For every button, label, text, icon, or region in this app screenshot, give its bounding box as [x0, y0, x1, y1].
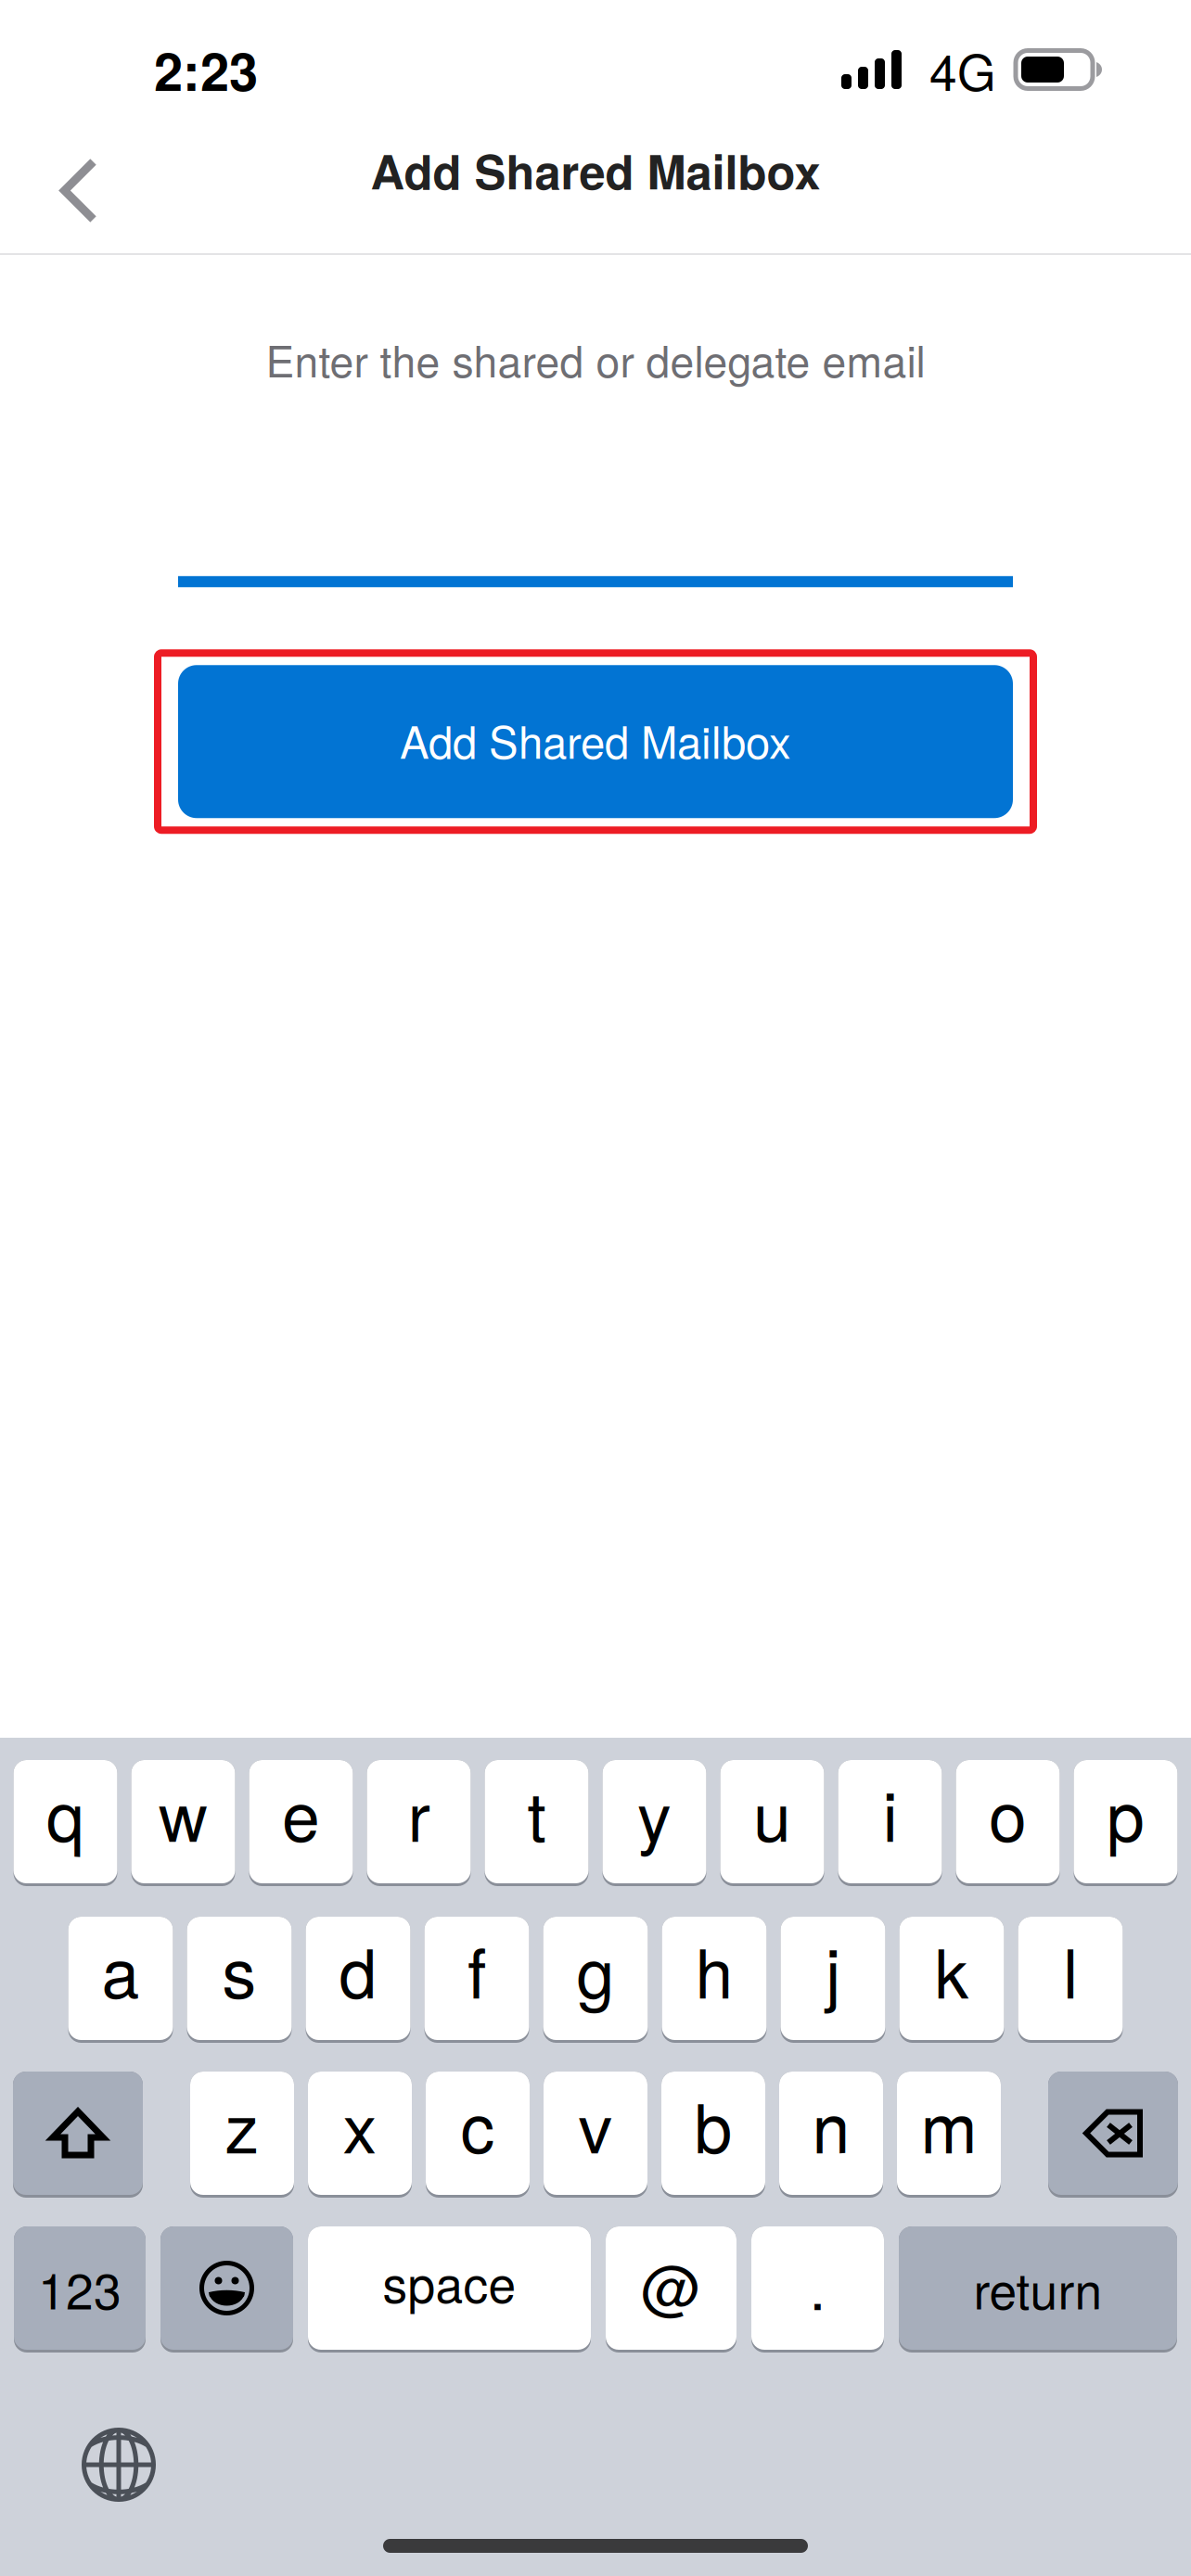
staticText: j [826, 1920, 840, 2018]
button[interactable]: Back [0, 135, 134, 246]
staticText: space [383, 2246, 516, 2317]
button[interactable]: o [956, 1760, 1060, 1883]
staticText: e [282, 1764, 320, 1861]
staticText: g [576, 1920, 615, 2018]
button[interactable]: b [661, 2072, 765, 2195]
button[interactable]: Emoji [160, 2226, 293, 2350]
button[interactable]: c [426, 2072, 530, 2195]
staticText: k [935, 1920, 969, 2018]
button[interactable]: q [13, 1760, 117, 1883]
button[interactable]: space [308, 2226, 591, 2350]
button[interactable]: s [187, 1917, 292, 2040]
staticText: 123 [38, 2253, 122, 2324]
button[interactable]: Add Shared Mailbox [154, 648, 1037, 835]
staticText: t [527, 1764, 546, 1861]
button[interactable]: n [779, 2072, 883, 2195]
staticText: o [989, 1764, 1027, 1861]
button[interactable]: g [543, 1917, 648, 2040]
button[interactable]: h [662, 1917, 767, 2040]
button[interactable]: w [131, 1760, 235, 1883]
staticText: w [159, 1764, 208, 1861]
button[interactable]: v [544, 2072, 647, 2195]
staticText: r [408, 1764, 430, 1861]
staticText: return [973, 2253, 1102, 2324]
staticText: Enter the shared or delegate email [266, 328, 925, 390]
staticText: y [637, 1764, 672, 1861]
button[interactable]: l [1018, 1917, 1123, 2040]
button[interactable]: 123 [14, 2226, 146, 2350]
button[interactable]: a [68, 1917, 173, 2040]
button[interactable]: . [751, 2226, 884, 2350]
staticText: a [102, 1920, 140, 2018]
button[interactable]: d [306, 1917, 410, 2040]
button[interactable]: y [602, 1760, 706, 1883]
staticText: . [809, 2242, 826, 2327]
staticText: z [225, 2075, 259, 2173]
staticText: c [461, 2075, 495, 2173]
button[interactable]: z [190, 2072, 294, 2195]
staticText: p [1107, 1764, 1145, 1861]
button[interactable]: return [899, 2226, 1177, 2350]
button[interactable]: t [485, 1760, 589, 1883]
button[interactable]: Next keyboard [63, 2414, 174, 2516]
staticText: v [578, 2075, 613, 2173]
button[interactable]: k [899, 1917, 1004, 2040]
button[interactable]: j [781, 1917, 885, 2040]
button[interactable]: Delete [1048, 2072, 1178, 2195]
button[interactable]: e [249, 1760, 353, 1883]
button[interactable]: x [308, 2072, 412, 2195]
staticText: i [883, 1764, 897, 1861]
staticText: @ [641, 2242, 701, 2327]
staticText: Add Shared Mailbox [371, 136, 820, 204]
staticText: h [695, 1920, 733, 2018]
staticText: q [46, 1764, 84, 1861]
staticText: u [753, 1764, 791, 1861]
staticText: n [812, 2075, 850, 2173]
staticText: x [343, 2075, 377, 2173]
button[interactable]: u [720, 1760, 824, 1883]
button[interactable]: r [367, 1760, 471, 1883]
staticText: 2:23 [154, 32, 258, 107]
staticText: Add Shared Mailbox [400, 708, 791, 771]
staticText: d [339, 1920, 377, 2018]
button[interactable]: f [424, 1917, 529, 2040]
button[interactable]: Shift [13, 2072, 143, 2195]
staticText: l [1063, 1920, 1078, 2018]
button[interactable]: i [838, 1760, 942, 1883]
staticText: m [921, 2075, 977, 2173]
staticText: 4G [929, 34, 995, 105]
button[interactable]: p [1074, 1760, 1178, 1883]
button[interactable]: @ [606, 2226, 736, 2350]
staticText: f [467, 1920, 486, 2018]
staticText: s [222, 1920, 256, 2018]
button[interactable]: m [897, 2072, 1001, 2195]
staticText: b [694, 2075, 732, 2173]
